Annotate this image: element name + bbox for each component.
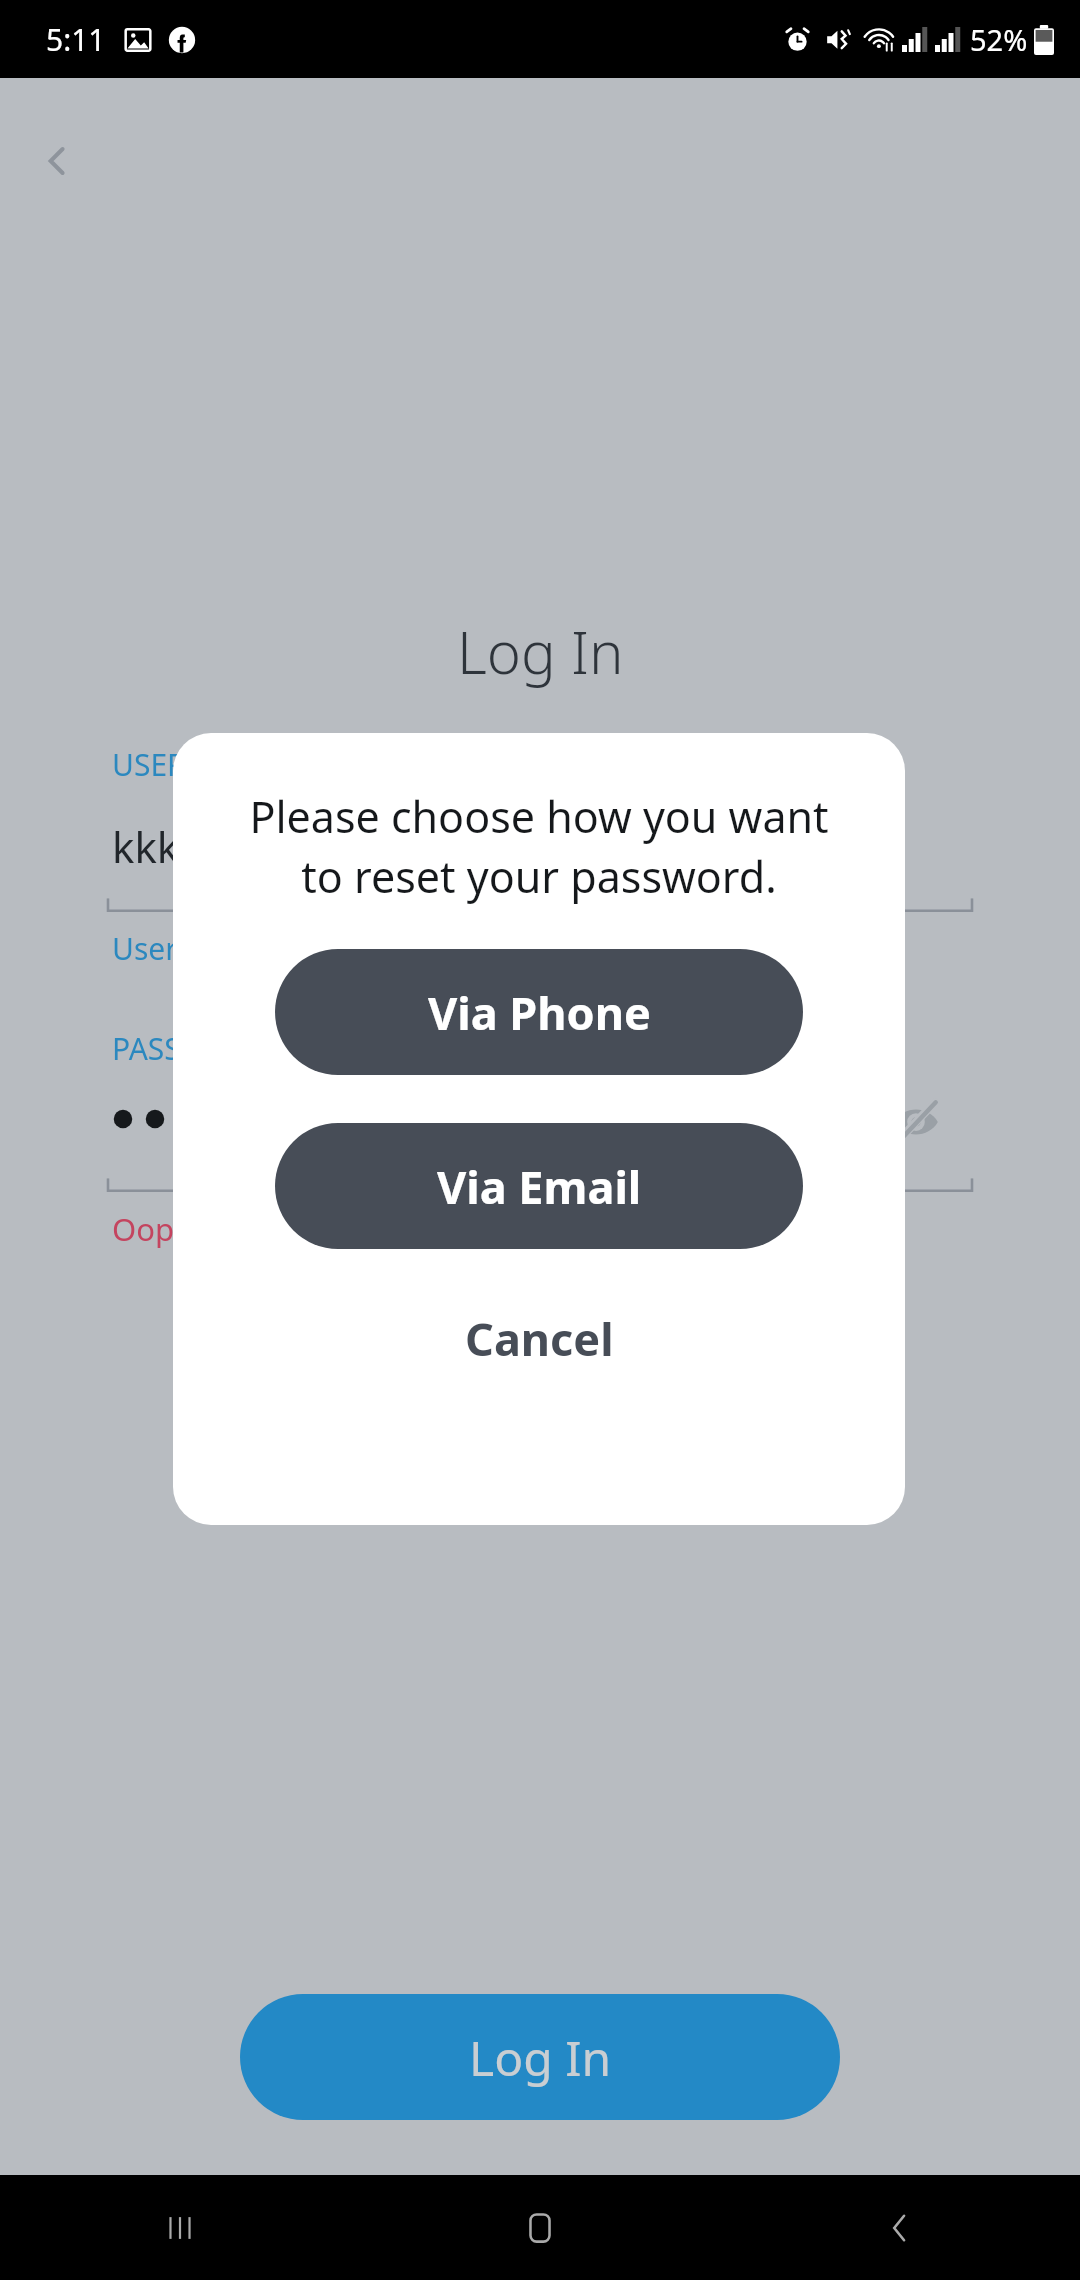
button[interactable]: Back xyxy=(14,118,100,204)
button[interactable]: Via Phone xyxy=(275,949,803,1075)
staticText: 52% xyxy=(970,20,1028,59)
button[interactable]: Cancel xyxy=(339,1293,739,1383)
staticText: USERNAME xyxy=(112,744,272,785)
staticText: 5:11 xyxy=(46,19,106,60)
button[interactable]: Show password xyxy=(880,1085,952,1157)
staticText: Username is required xyxy=(112,928,417,969)
button[interactable]: Recent apps xyxy=(132,2180,228,2276)
staticText: Via Email xyxy=(437,1156,642,1217)
staticText: kkk xyxy=(112,818,180,875)
staticText: Log In xyxy=(457,612,624,691)
staticText: Cancel xyxy=(465,1308,614,1369)
button[interactable]: Back xyxy=(852,2180,948,2276)
staticText: Oops! That password is incorrect. xyxy=(112,1208,596,1250)
staticText: Via Phone xyxy=(428,982,651,1043)
button[interactable]: Log In xyxy=(240,1994,840,2120)
button[interactable]: Via Email xyxy=(275,1123,803,1249)
button[interactable]: Home xyxy=(492,2180,588,2276)
staticText: PASSWORD xyxy=(112,1028,273,1069)
staticText: Please choose how you want to reset your… xyxy=(239,787,839,906)
staticText: Log In xyxy=(469,2025,612,2090)
